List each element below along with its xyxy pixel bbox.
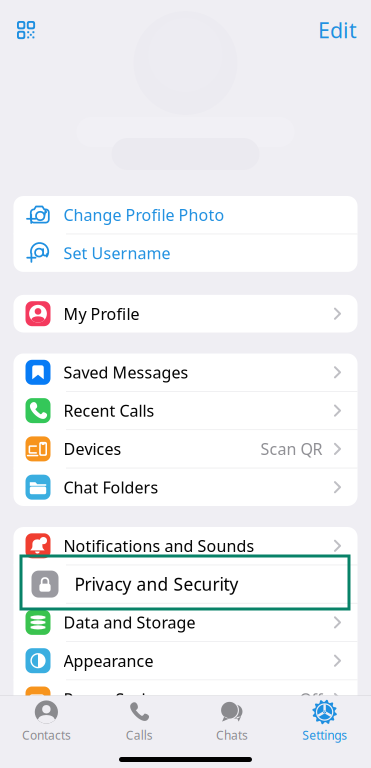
staticText: Change Profile Photo bbox=[63, 204, 224, 225]
staticText: Scan QR bbox=[260, 438, 322, 459]
staticText: Calls bbox=[126, 727, 153, 743]
button[interactable]: Privacy and Security bbox=[13, 565, 357, 603]
staticText: Privacy and Security bbox=[74, 573, 238, 596]
staticText: Chats bbox=[216, 727, 248, 743]
button[interactable]: Chat Folders bbox=[13, 468, 357, 506]
button[interactable]: Saved Messages bbox=[13, 353, 357, 391]
staticText: Settings bbox=[302, 727, 347, 743]
button[interactable]: Calls bbox=[93, 696, 186, 745]
staticText: Saved Messages bbox=[63, 362, 188, 383]
staticText: Devices bbox=[63, 438, 121, 459]
staticText: Set Username bbox=[63, 242, 170, 264]
button[interactable]: Notifications and Sounds bbox=[13, 527, 357, 565]
button[interactable]: Scan QR code bbox=[0, 10, 37, 50]
button[interactable]: Settings bbox=[278, 696, 371, 745]
button[interactable]: Set Username bbox=[13, 234, 357, 272]
button[interactable]: Power Saving bbox=[13, 680, 357, 718]
staticText: Recent Calls bbox=[63, 400, 154, 421]
button[interactable]: Recent Calls bbox=[13, 392, 357, 429]
button[interactable]: Chats bbox=[185, 696, 278, 745]
button[interactable]: Edit bbox=[318, 7, 371, 53]
button[interactable]: Devices bbox=[13, 430, 357, 468]
button[interactable]: Data and Storage bbox=[13, 604, 357, 641]
button[interactable]: My Profile bbox=[13, 295, 357, 332]
button[interactable]: Change Profile Photo bbox=[13, 196, 357, 234]
staticText: Power Saving bbox=[63, 688, 165, 710]
button[interactable]: Contacts bbox=[0, 696, 93, 745]
staticText: Edit bbox=[318, 16, 357, 44]
staticText: Data and Storage bbox=[63, 612, 195, 633]
staticText: Off bbox=[299, 688, 322, 710]
staticText: Notifications and Sounds bbox=[63, 535, 254, 556]
staticText: Chat Folders bbox=[63, 477, 158, 498]
staticText: Contacts bbox=[22, 727, 71, 743]
staticText: Appearance bbox=[63, 650, 153, 671]
staticText: My Profile bbox=[63, 303, 139, 324]
button[interactable]: Appearance bbox=[13, 642, 357, 679]
